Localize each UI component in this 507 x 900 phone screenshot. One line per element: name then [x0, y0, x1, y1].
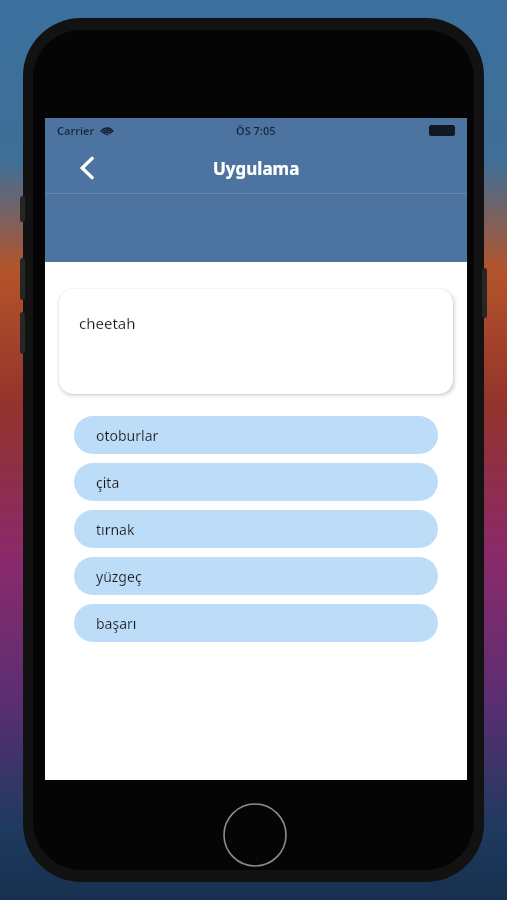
button[interactable]: otoburlar: [74, 416, 438, 454]
button[interactable]: cheetah: [59, 289, 453, 394]
button[interactable]: tırnak: [74, 510, 438, 548]
button[interactable]: Back: [67, 148, 107, 188]
staticText: cheetah: [79, 313, 136, 333]
button[interactable]: başarı: [74, 604, 438, 642]
staticText: yüzgeç: [96, 567, 142, 586]
staticText: otoburlar: [96, 426, 159, 445]
staticText: ÖS 7:05: [236, 123, 276, 138]
staticText: Uygulama: [213, 157, 300, 180]
staticText: tırnak: [96, 520, 135, 539]
staticText: çita: [96, 473, 120, 492]
button[interactable]: çita: [74, 463, 438, 501]
staticText: Carrier: [57, 123, 95, 138]
staticText: başarı: [96, 614, 137, 633]
button[interactable]: yüzgeç: [74, 557, 438, 595]
